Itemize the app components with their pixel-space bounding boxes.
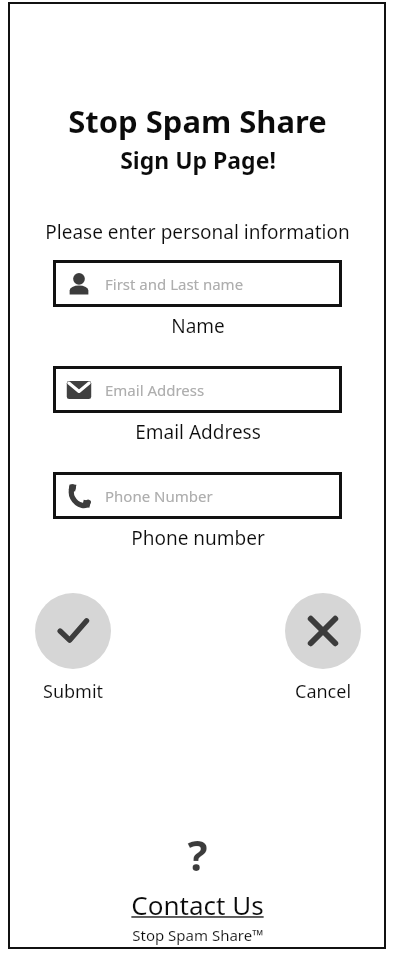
button[interactable]: Email Address	[53, 366, 342, 413]
button[interactable]: Submit	[35, 593, 111, 669]
staticText: Name	[171, 313, 225, 339]
staticText: Stop Spam Share	[68, 100, 327, 142]
staticText: Phone number	[131, 525, 265, 551]
staticText: ?	[187, 826, 208, 883]
staticText: Contact Us	[131, 887, 264, 922]
staticText: Email Address	[135, 419, 261, 445]
button[interactable]: ?	[0, 826, 395, 945]
staticText: Cancel	[295, 679, 352, 704]
button[interactable]: First and Last name	[53, 260, 342, 307]
button[interactable]: Phone Number	[53, 472, 342, 519]
staticText: Submit	[43, 679, 104, 704]
staticText: First and Last name	[105, 274, 244, 294]
staticText: Phone Number	[105, 486, 213, 506]
button[interactable]: Cancel	[285, 593, 361, 669]
staticText: Email Address	[105, 380, 205, 400]
staticText: Please enter personal information	[45, 219, 350, 245]
staticText: Sign Up Page!	[120, 144, 276, 175]
staticText: Stop Spam Share™	[132, 925, 264, 945]
